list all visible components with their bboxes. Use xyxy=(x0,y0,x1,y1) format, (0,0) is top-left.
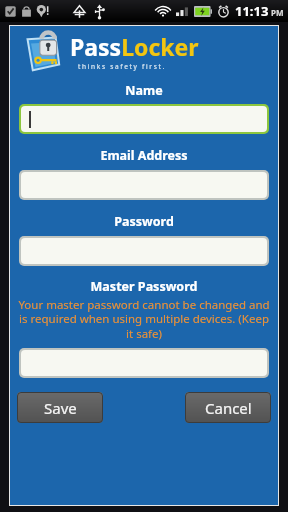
button[interactable]: Cancel xyxy=(185,392,271,423)
button[interactable]: Save xyxy=(17,392,103,423)
staticText: PassLocker xyxy=(70,31,199,62)
staticText: t h i n k s s a f e t y f i r s t . xyxy=(78,62,165,71)
staticText: Cancel xyxy=(205,398,252,418)
staticText: Your master password cannot be changed a… xyxy=(16,297,272,342)
staticText: Master Password xyxy=(10,278,278,295)
staticText: Password xyxy=(10,213,278,230)
button[interactable] xyxy=(21,106,267,132)
staticText: Save xyxy=(44,398,77,418)
staticText: Email Address xyxy=(10,147,278,164)
staticText: 11:13 xyxy=(235,2,269,20)
staticText: PM xyxy=(271,7,284,18)
staticText: Name xyxy=(10,82,278,99)
